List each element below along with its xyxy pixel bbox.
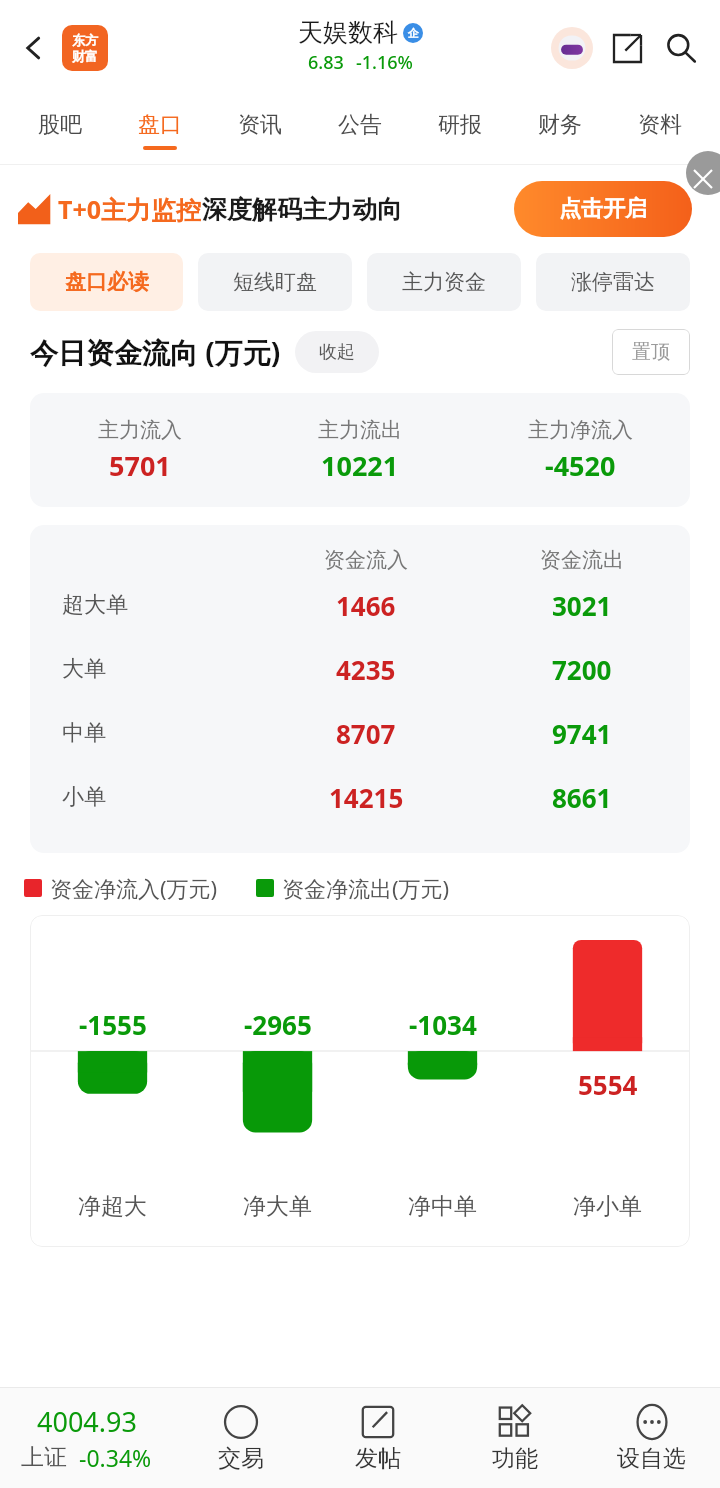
staticText: 资金净流入(万元) (50, 873, 218, 903)
staticText: 主力资金 (402, 269, 486, 295)
staticText: T+0主力监控 (58, 192, 202, 226)
button[interactable]: 研报 (410, 96, 510, 164)
staticText: 小单 (62, 783, 106, 811)
staticText: 深度解码主力动向 (202, 194, 402, 225)
button[interactable]: 设自选 (583, 1388, 720, 1488)
staticText: 9741 (552, 716, 612, 751)
button[interactable]: 主力流入 (30, 393, 690, 507)
staticText: 大单 (62, 655, 106, 683)
staticText: 交易 (218, 1444, 264, 1473)
button[interactable]: Share (602, 23, 652, 73)
staticText: 中单 (62, 719, 106, 747)
staticText: 短线盯盘 (233, 269, 317, 295)
staticText: 8707 (336, 716, 396, 751)
button[interactable]: 盘口必读 (30, 253, 183, 311)
button[interactable]: 涨停雷达 (536, 253, 690, 311)
staticText: 盘口 (138, 111, 182, 139)
button[interactable]: AI assistant (548, 24, 596, 72)
staticText: 公告 (338, 111, 382, 139)
button[interactable]: 点击开启 (514, 181, 692, 237)
staticText: 7200 (552, 652, 612, 687)
staticText: 净超大 (78, 1192, 147, 1221)
button[interactable]: -1555 (30, 915, 690, 1247)
staticText: 收起 (319, 341, 355, 364)
staticText: -1034 (409, 1007, 477, 1042)
button[interactable]: 股吧 (10, 96, 110, 164)
button[interactable]: 4004.93 (0, 1388, 172, 1488)
button[interactable]: 交易 (172, 1388, 309, 1488)
button[interactable]: Search (656, 23, 706, 73)
staticText: 5554 (578, 1067, 638, 1102)
staticText: 4004.93 (37, 1403, 137, 1440)
button[interactable]: Back (8, 22, 60, 74)
staticText: 点击开启 (559, 195, 647, 223)
staticText: 资金流出 (540, 547, 624, 573)
staticText: 8661 (552, 780, 612, 815)
staticText: 天娱数科 (298, 17, 398, 48)
staticText: 14215 (329, 780, 404, 815)
button[interactable]: 资料 (610, 96, 710, 164)
staticText: -1.16% (356, 50, 413, 75)
staticText: 主力流出 (318, 417, 402, 443)
button[interactable]: 资讯 (210, 96, 310, 164)
button[interactable]: 收起 (295, 331, 379, 373)
staticText: 股吧 (38, 111, 82, 139)
staticText: 资料 (638, 111, 682, 139)
staticText: 企 (408, 26, 419, 40)
staticText: 10221 (321, 447, 399, 484)
button[interactable]: 主力资金 (367, 253, 521, 311)
button[interactable]: 短线盯盘 (198, 253, 352, 311)
staticText: 超大单 (62, 591, 128, 619)
staticText: 上证 (21, 1443, 67, 1472)
staticText: 6.83 (308, 50, 344, 75)
staticText: 1466 (336, 588, 396, 623)
staticText: 5701 (109, 447, 171, 484)
staticText: -1555 (79, 1007, 147, 1042)
staticText: 净大单 (243, 1192, 312, 1221)
staticText: 4235 (336, 652, 396, 687)
staticText: 3021 (552, 588, 612, 623)
staticText: -2965 (244, 1007, 312, 1042)
staticText: 东方 (72, 32, 98, 48)
staticText: 主力净流入 (528, 417, 633, 443)
staticText: 资金净流出(万元) (282, 873, 450, 903)
button[interactable]: 公告 (310, 96, 410, 164)
button[interactable]: 财务 (510, 96, 610, 164)
staticText: 净小单 (573, 1192, 642, 1221)
button[interactable]: East Money logo (62, 25, 108, 71)
staticText: -4520 (545, 447, 616, 484)
staticText: 设自选 (617, 1444, 686, 1473)
button[interactable]: 功能 (446, 1388, 583, 1488)
staticText: 盘口必读 (65, 269, 149, 295)
button[interactable]: 超大单 (30, 573, 690, 637)
staticText: 涨停雷达 (571, 269, 655, 295)
staticText: 财富 (72, 48, 98, 64)
staticText: 今日资金流向 (万元) (30, 333, 281, 371)
staticText: 功能 (492, 1444, 538, 1473)
staticText: 主力流入 (98, 417, 182, 443)
staticText: 财务 (538, 111, 582, 139)
staticText: 发帖 (355, 1444, 401, 1473)
staticText: -0.34% (79, 1442, 152, 1473)
staticText: 资讯 (238, 111, 282, 139)
staticText: 置顶 (632, 340, 670, 364)
button[interactable]: 置顶 (612, 329, 690, 375)
button[interactable]: 盘口 (110, 96, 210, 164)
staticText: 研报 (438, 111, 482, 139)
staticText: 净中单 (408, 1192, 477, 1221)
button[interactable]: 小单 (30, 765, 690, 829)
button[interactable]: 发帖 (309, 1388, 446, 1488)
button[interactable]: Close (686, 151, 720, 195)
staticText: 资金流入 (324, 547, 408, 573)
button[interactable]: 大单 (30, 637, 690, 701)
button[interactable]: 中单 (30, 701, 690, 765)
